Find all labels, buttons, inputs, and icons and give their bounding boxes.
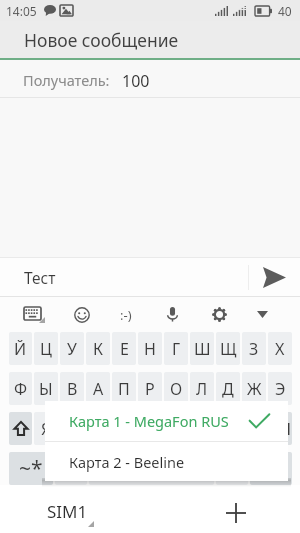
staticText: :-)	[120, 306, 132, 324]
staticText: Р	[145, 378, 155, 400]
button[interactable]: Э	[268, 372, 292, 405]
staticText: 100	[122, 70, 150, 92]
button[interactable]: Ц	[34, 332, 58, 365]
staticText: Б	[223, 418, 233, 440]
staticText: И	[144, 418, 157, 440]
button[interactable]: С	[86, 412, 110, 445]
button[interactable]: А	[86, 372, 110, 405]
staticText: Я	[41, 418, 52, 440]
button[interactable]: Ч	[60, 412, 84, 445]
button[interactable]: У	[60, 332, 84, 365]
button[interactable]: И	[138, 412, 162, 445]
staticText: 14:05	[6, 3, 37, 19]
button[interactable]: О	[164, 372, 188, 405]
staticText: Г	[172, 338, 181, 360]
staticText: ,	[69, 459, 74, 479]
staticText: Ш	[194, 338, 211, 360]
button[interactable]: Т	[164, 412, 188, 445]
staticText: О	[170, 378, 183, 400]
button[interactable]: Х	[268, 332, 292, 365]
staticText: Й	[14, 338, 27, 360]
staticText: Карта 1 - MegaFon RUS	[69, 411, 229, 431]
staticText: В	[67, 378, 78, 400]
staticText: Ь	[197, 418, 207, 440]
button[interactable]: П	[112, 372, 136, 405]
staticText: Т	[172, 418, 181, 440]
button[interactable]: Я	[34, 412, 58, 445]
button[interactable]: Symbols	[9, 452, 53, 485]
button[interactable]: Ф	[9, 372, 32, 405]
button[interactable]: Settings	[197, 297, 241, 332]
staticText: Ю	[246, 418, 262, 440]
button[interactable]: В	[60, 372, 84, 405]
button[interactable]: Ь	[190, 412, 214, 445]
staticText: Д	[222, 378, 234, 400]
staticText: Ы	[39, 378, 53, 400]
button[interactable]: .	[216, 452, 248, 485]
button[interactable]: Backspace	[268, 412, 292, 445]
button[interactable]: Hide keyboard	[240, 297, 284, 332]
button[interactable]: Щ	[216, 332, 240, 365]
staticText: SIM1	[47, 500, 88, 523]
staticText: К	[93, 338, 104, 360]
staticText: Л	[196, 378, 208, 400]
button[interactable]: Keyboard	[12, 297, 56, 332]
button[interactable]: З	[242, 332, 266, 365]
staticText: А	[93, 378, 104, 400]
button[interactable]: Ж	[242, 372, 266, 405]
staticText: Тест	[24, 267, 272, 288]
staticText: Карта 2 - Beeline	[69, 452, 185, 472]
button[interactable]: Voice input	[150, 297, 194, 332]
button[interactable]: Send	[249, 258, 300, 296]
staticText: ~*	[19, 454, 43, 483]
button[interactable]: Emoticons	[104, 297, 148, 332]
button[interactable]: Й	[9, 332, 32, 365]
staticText: Ц	[40, 338, 52, 360]
button[interactable]: Р	[138, 372, 162, 405]
staticText: Щ	[220, 338, 237, 360]
button[interactable]: М	[112, 412, 136, 445]
button[interactable]: SIM1	[36, 487, 98, 533]
staticText: Ф	[14, 378, 28, 400]
button[interactable]: Карта 2 - Beeline	[45, 442, 288, 481]
button[interactable]: Ю	[242, 412, 266, 445]
button[interactable]: ,	[55, 452, 87, 485]
button[interactable]: Б	[216, 412, 240, 445]
staticText: З	[249, 338, 259, 360]
button[interactable]: Карта 1 - MegaFon RUS	[45, 401, 288, 441]
button[interactable]: Add	[211, 489, 261, 533]
staticText: Э	[275, 378, 286, 400]
staticText: Ч	[67, 418, 78, 440]
staticText: Х	[275, 338, 285, 360]
staticText: Получатель:	[23, 70, 110, 90]
staticText: Е	[120, 338, 129, 360]
staticText: У	[67, 338, 77, 360]
staticText: Н	[144, 338, 156, 360]
button[interactable]: Emoji	[60, 297, 104, 332]
staticText: С	[93, 418, 104, 440]
button[interactable]: Ы	[34, 372, 58, 405]
button[interactable]: Д	[216, 372, 240, 405]
button[interactable]: Л	[190, 372, 214, 405]
button[interactable]: Enter	[250, 452, 292, 485]
button[interactable]: Shift	[9, 412, 32, 445]
staticText: М	[117, 418, 132, 440]
button[interactable]: Space	[89, 452, 214, 485]
staticText: 40	[278, 3, 292, 19]
staticText: Ж	[247, 378, 262, 400]
button[interactable]: Г	[164, 332, 188, 365]
button[interactable]: Н	[138, 332, 162, 365]
button[interactable]: К	[86, 332, 110, 365]
staticText: П	[118, 378, 130, 400]
button[interactable]: Е	[112, 332, 136, 365]
staticText: Новое сообщение	[24, 28, 179, 52]
button[interactable]: Ш	[190, 332, 214, 365]
